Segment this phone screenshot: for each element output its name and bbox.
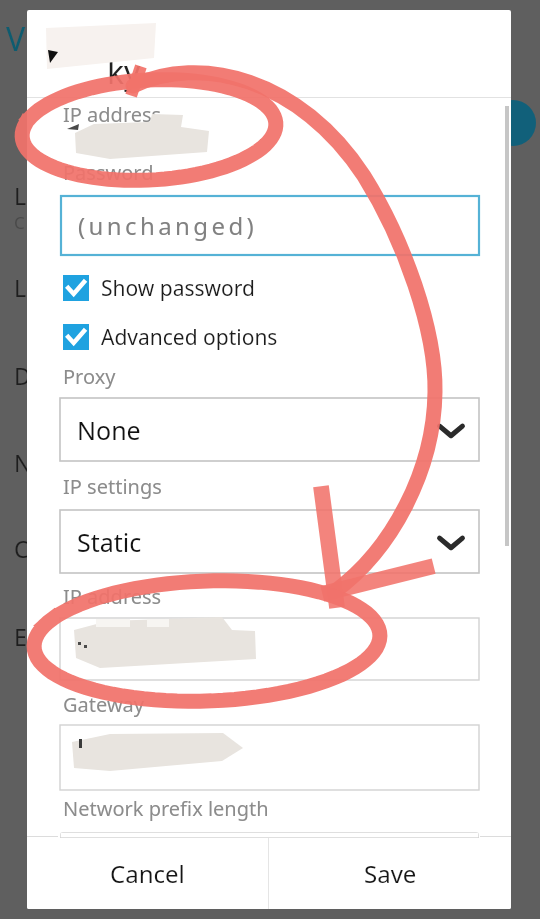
staticText: V bbox=[6, 17, 26, 61]
staticText: Password bbox=[63, 159, 154, 186]
button[interactable]: None bbox=[60, 398, 479, 461]
button[interactable]: (unchanged) bbox=[61, 196, 479, 255]
staticText: IP address bbox=[63, 101, 162, 128]
button[interactable] bbox=[60, 725, 479, 790]
staticText: Advanced options bbox=[101, 323, 278, 352]
staticText: N bbox=[14, 447, 32, 478]
staticText: Save bbox=[364, 857, 417, 890]
staticText: None bbox=[77, 413, 141, 447]
staticText: C bbox=[14, 211, 25, 234]
button[interactable]: Advanced options bbox=[27, 318, 511, 356]
staticText: D bbox=[14, 360, 31, 391]
staticText: C bbox=[14, 533, 29, 564]
staticText: Network prefix length bbox=[63, 795, 269, 822]
staticText: Cancel bbox=[110, 857, 185, 890]
button[interactable]: Save bbox=[269, 838, 511, 909]
staticText: IP address bbox=[63, 583, 162, 610]
staticText: Proxy bbox=[63, 363, 116, 390]
button[interactable]: Cancel bbox=[27, 838, 268, 909]
staticText: L bbox=[14, 272, 27, 303]
staticText: L bbox=[14, 180, 27, 211]
staticText: ky bbox=[107, 50, 141, 94]
staticText: Static bbox=[77, 525, 142, 559]
button[interactable]: Static bbox=[60, 510, 479, 573]
staticText: (unchanged) bbox=[78, 209, 258, 242]
staticText: Show password bbox=[101, 274, 255, 303]
staticText: Gateway bbox=[63, 691, 145, 718]
button[interactable]: Add network bbox=[490, 100, 536, 146]
staticText: IP settings bbox=[63, 473, 162, 500]
button[interactable] bbox=[60, 618, 479, 680]
staticText: E bbox=[14, 621, 27, 652]
button[interactable]: Show password bbox=[27, 269, 511, 307]
